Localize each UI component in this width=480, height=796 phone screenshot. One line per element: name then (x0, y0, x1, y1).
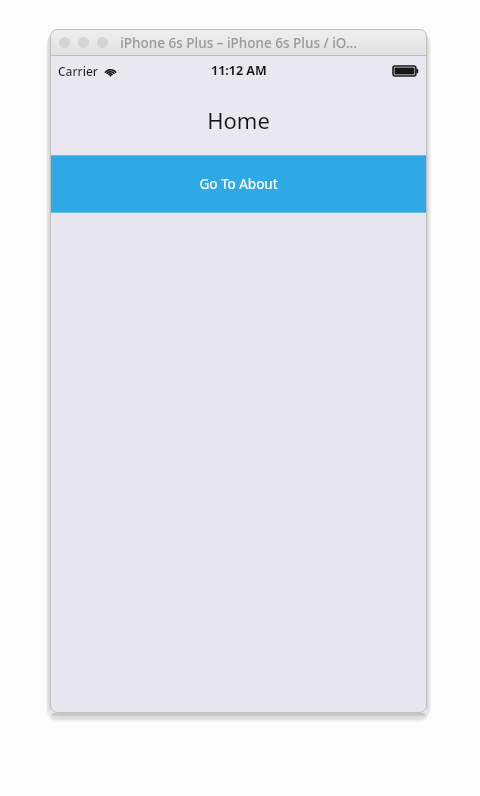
staticText: iPhone 6s Plus – iPhone 6s Plus / iO… (120, 34, 357, 52)
staticText: Carrier (58, 63, 98, 79)
staticText: Go To About (199, 175, 278, 193)
button[interactable]: Zoom window (97, 37, 108, 48)
button[interactable]: Go To About (50, 155, 427, 213)
staticText: 11:12 AM (211, 62, 267, 79)
button[interactable]: Minimize window (78, 37, 89, 48)
button[interactable]: Close window (59, 37, 70, 48)
staticText: Home (207, 105, 270, 135)
